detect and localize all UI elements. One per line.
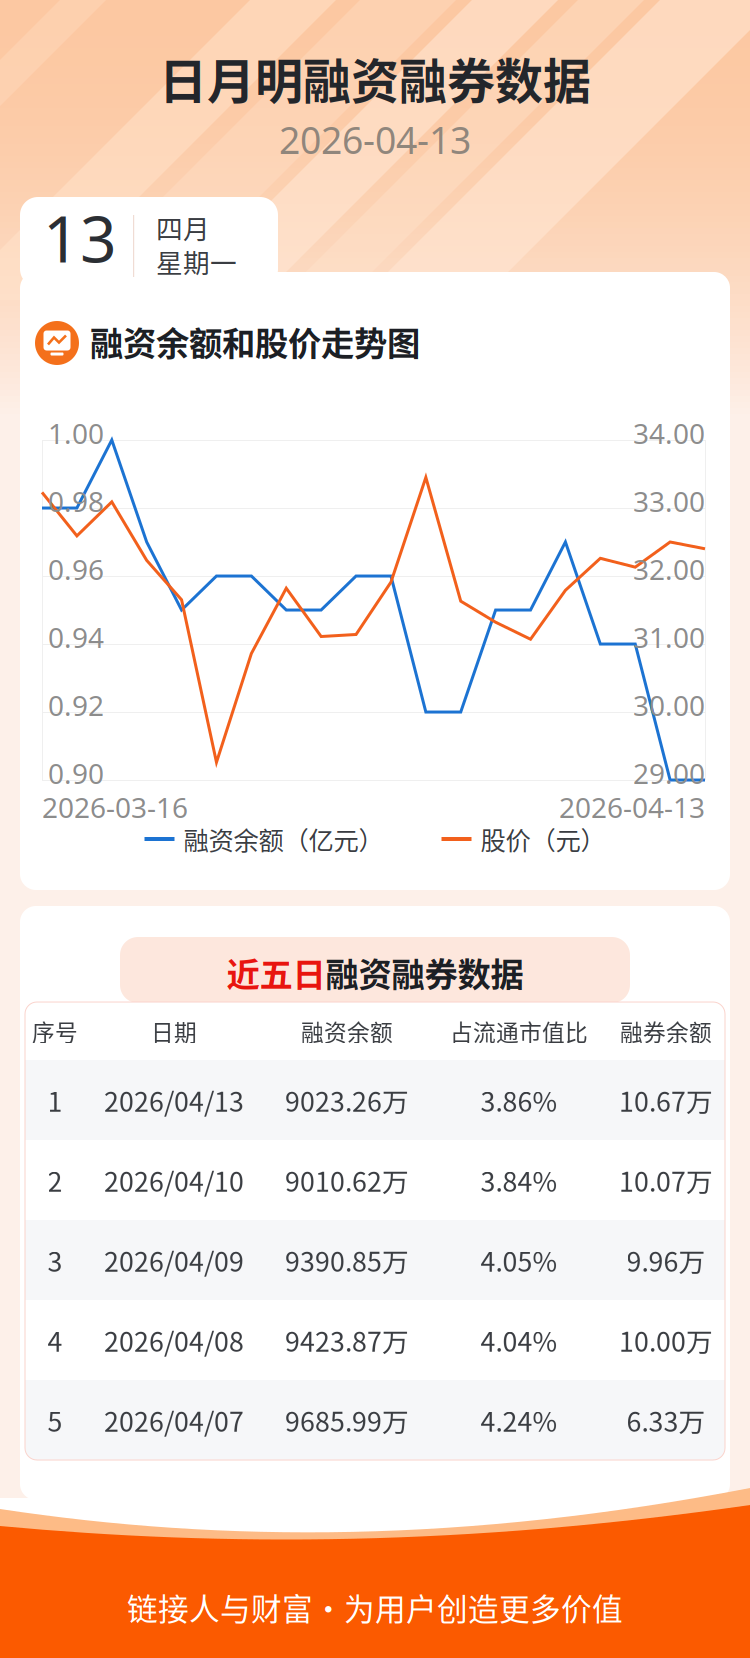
staticText: 3.84% — [480, 1161, 557, 1199]
staticText: 日期 — [151, 1015, 197, 1047]
staticText: 2026/04/10 — [104, 1161, 244, 1199]
staticText: 融资融券数据 — [325, 948, 523, 996]
staticText: 9390.85万 — [285, 1241, 409, 1279]
staticText: 32.00 — [633, 550, 705, 588]
staticText: 2026-04-13 — [559, 788, 705, 826]
staticText: 4.05% — [480, 1241, 557, 1279]
staticText: 5 — [47, 1401, 62, 1439]
staticText: 9423.87万 — [285, 1321, 409, 1359]
staticText: 0.96 — [48, 550, 104, 588]
staticText: 占流通市值比 — [450, 1015, 588, 1047]
staticText: 33.00 — [633, 482, 705, 520]
staticText: 2026/04/07 — [104, 1401, 244, 1439]
staticText: 融资余额（亿元） — [183, 821, 383, 857]
staticText: 2026-03-16 — [42, 788, 188, 826]
staticText: 四月 — [156, 208, 210, 247]
staticText: 0.94 — [48, 618, 104, 656]
staticText: 序号 — [32, 1015, 78, 1047]
staticText: 30.00 — [633, 686, 705, 724]
staticText: 日月明融资融券数据 — [159, 43, 591, 112]
staticText: 10.07万 — [619, 1161, 713, 1199]
staticText: 股价（元） — [480, 821, 605, 857]
staticText: 2026/04/09 — [104, 1241, 244, 1279]
staticText: 近五日 — [226, 948, 325, 996]
staticText: 10.00万 — [619, 1321, 713, 1359]
staticText: 4.04% — [480, 1321, 557, 1359]
staticText: 29.00 — [633, 754, 705, 792]
staticText: 星期一 — [156, 242, 237, 281]
staticText: 融券余额 — [620, 1015, 712, 1047]
staticText: 13 — [43, 194, 117, 281]
staticText: 2026-04-13 — [279, 114, 471, 165]
staticText: 34.00 — [633, 414, 705, 452]
staticText: 1.00 — [48, 414, 104, 452]
staticText: 9685.99万 — [285, 1401, 409, 1439]
staticText: 融资余额和股价走势图 — [90, 317, 420, 365]
staticText: 31.00 — [633, 618, 705, 656]
staticText: 4.24% — [480, 1401, 557, 1439]
staticText: 融资余额 — [301, 1015, 393, 1047]
staticText: 3.86% — [480, 1081, 557, 1119]
staticText: 4 — [47, 1321, 62, 1359]
staticText: 9023.26万 — [285, 1081, 409, 1119]
staticText: 9010.62万 — [285, 1161, 409, 1199]
staticText: 9.96万 — [626, 1241, 705, 1279]
staticText: 1 — [47, 1081, 62, 1119]
staticText: 链接人与财富·为用户创造更多价值 — [127, 1585, 623, 1629]
staticText: 0.92 — [48, 686, 104, 724]
staticText: 0.90 — [48, 754, 104, 792]
staticText: 6.33万 — [626, 1401, 705, 1439]
staticText: 2026/04/08 — [104, 1321, 244, 1359]
staticText: 10.67万 — [619, 1081, 713, 1119]
staticText: 3 — [47, 1241, 62, 1279]
staticText: 2026/04/13 — [104, 1081, 244, 1119]
staticText: 2 — [47, 1161, 62, 1199]
staticText: 0.98 — [48, 482, 104, 520]
